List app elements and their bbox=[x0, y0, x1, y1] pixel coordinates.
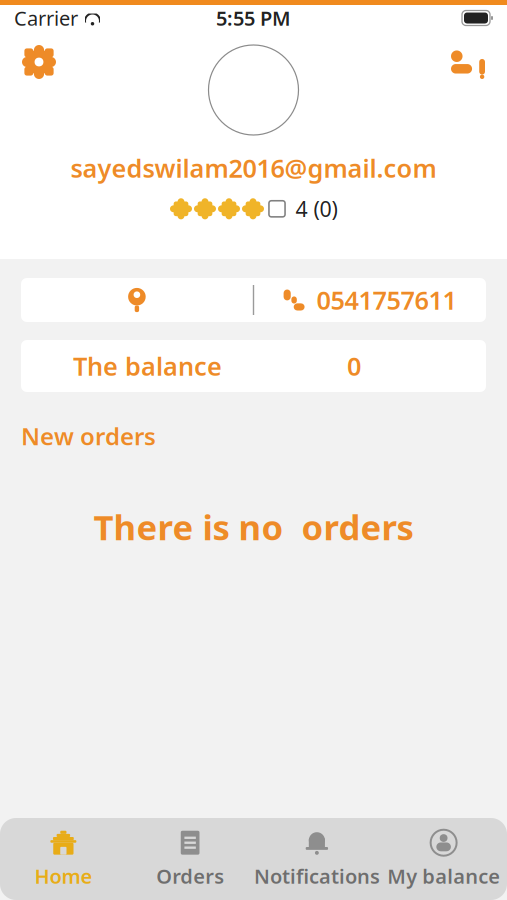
button[interactable]: Settings bbox=[12, 35, 66, 89]
button[interactable]: 0541757611 bbox=[254, 278, 486, 322]
staticText: Home bbox=[34, 863, 92, 889]
button[interactable]: Orders bbox=[127, 822, 254, 896]
staticText: New orders bbox=[21, 420, 156, 452]
button[interactable]: My balance bbox=[380, 822, 507, 896]
staticText: Carrier bbox=[14, 5, 78, 31]
staticText: Notifications bbox=[254, 863, 380, 889]
staticText: My balance bbox=[387, 863, 500, 889]
staticText: There is no orders bbox=[93, 504, 413, 550]
staticText: 0541757611 bbox=[317, 283, 457, 317]
button[interactable]: Home bbox=[0, 822, 127, 896]
staticText: The balance bbox=[73, 349, 222, 383]
staticText: 5:55 PM bbox=[216, 5, 291, 31]
staticText: Orders bbox=[156, 863, 224, 889]
staticText: 4 (0) bbox=[295, 195, 337, 223]
button[interactable]: Location bbox=[21, 278, 253, 322]
button[interactable]: Edit profile bbox=[441, 35, 495, 89]
button[interactable]: Notifications bbox=[253, 822, 380, 896]
staticText: 0 bbox=[347, 349, 361, 383]
staticText: sayedswilam2016@gmail.com bbox=[70, 151, 436, 185]
